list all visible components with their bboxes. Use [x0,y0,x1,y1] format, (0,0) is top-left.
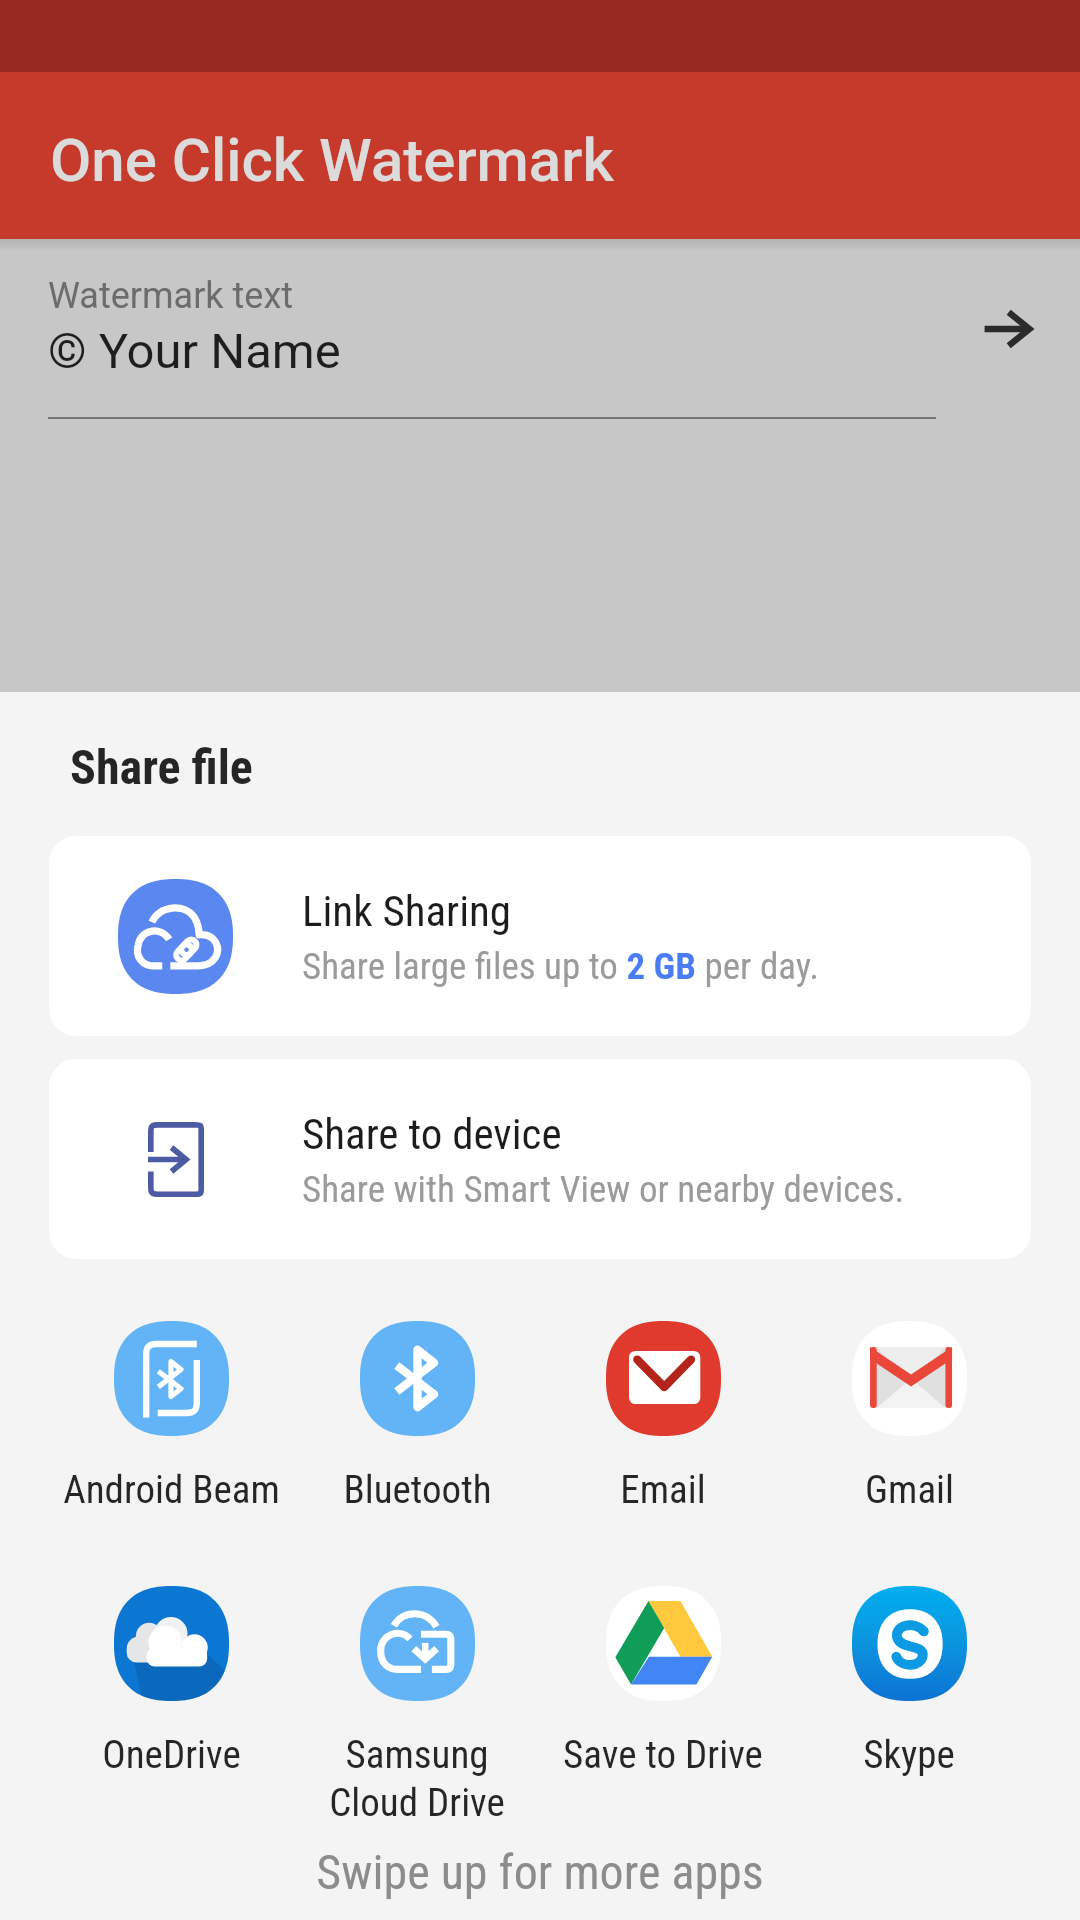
button[interactable]: Save to Drive [540,1586,786,1778]
staticText: Watermark text [48,275,294,317]
staticText: Bluetooth [343,1467,492,1513]
staticText: Share large files up to 2 GB per day. [302,945,819,988]
button[interactable]: Email [540,1321,786,1513]
staticText: Email [620,1467,706,1513]
staticText: Save to Drive [563,1732,763,1778]
button[interactable]: Samsung Cloud Drive [294,1586,540,1826]
button[interactable]: Gmail [786,1321,1032,1513]
staticText: Samsung Cloud Drive [329,1732,505,1826]
button[interactable]: Apply watermark [947,269,1067,389]
button[interactable]: Skype [786,1586,1032,1778]
button[interactable]: Link Sharing [49,836,1031,1036]
staticText: Skype [863,1732,955,1778]
button[interactable]: Share to device [49,1059,1031,1259]
button[interactable]: Android Beam [48,1321,294,1513]
staticText: Share with Smart View or nearby devices. [302,1168,905,1211]
staticText: Android Beam [63,1467,280,1513]
staticText: One Click Watermark [50,125,614,195]
staticText: Link Sharing [302,886,512,936]
staticText: Share to device [302,1109,562,1159]
button[interactable]: One Click Watermark [0,72,1080,239]
button[interactable]: OneDrive [48,1586,294,1778]
staticText: © Your Name [48,323,341,380]
staticText: OneDrive [102,1732,241,1778]
staticText: Swipe up for more apps [0,1844,1080,1900]
button[interactable]: Bluetooth [294,1321,540,1513]
staticText: Gmail [865,1467,954,1513]
staticText: Share file [70,739,253,795]
